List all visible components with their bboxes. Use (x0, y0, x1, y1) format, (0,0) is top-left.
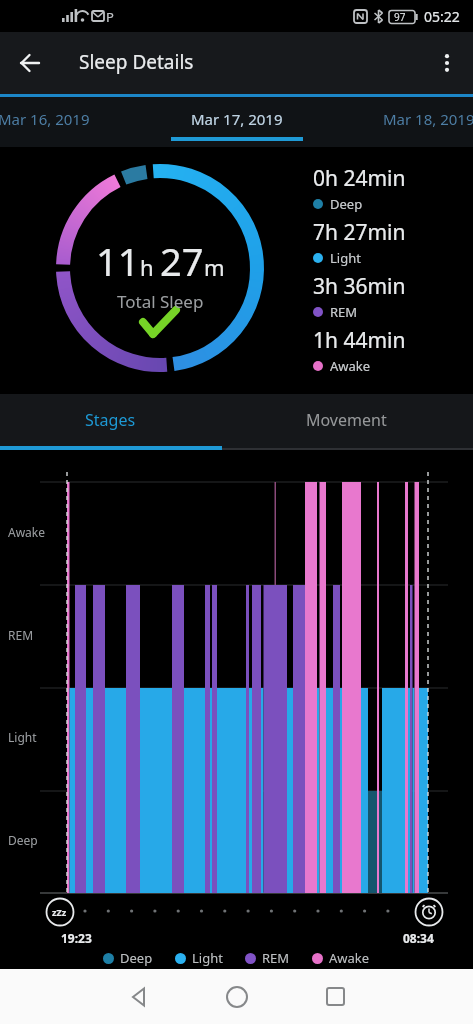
staticText: Deep (330, 195, 363, 213)
staticText: 1h 44min (313, 326, 406, 355)
staticText: 3h 36min (313, 272, 406, 301)
button[interactable] (104, 969, 174, 1024)
staticText: Deep (8, 832, 38, 848)
button[interactable]: Mar 18, 2019 (383, 109, 473, 129)
button[interactable] (6, 39, 54, 87)
staticText: Deep (120, 949, 153, 967)
staticText: Awake (329, 949, 370, 967)
staticText: 0h 24min (313, 164, 406, 193)
staticText: Awake (330, 357, 371, 375)
button[interactable]: Stages (0, 394, 236, 446)
staticText: 97 (394, 10, 406, 24)
staticText: REM (330, 303, 358, 321)
staticText: 08:34 (403, 930, 434, 946)
staticText: zZz (52, 906, 67, 918)
staticText: 27 (160, 235, 204, 287)
staticText: 19:23 (61, 930, 92, 946)
staticText: Stages (85, 409, 136, 431)
staticText: Movement (306, 409, 387, 431)
staticText: Light (8, 729, 37, 745)
button[interactable]: Mar 16, 2019 (0, 109, 90, 129)
button[interactable]: Mar 17, 2019 (191, 109, 283, 129)
button[interactable] (202, 969, 272, 1024)
staticText: Light (330, 249, 361, 267)
staticText: REM (8, 627, 34, 643)
staticText: 7h 27min (313, 218, 406, 247)
staticText: Light (192, 949, 223, 967)
staticText: P (106, 8, 114, 26)
staticText: m (204, 252, 225, 282)
button[interactable] (300, 969, 370, 1024)
staticText: Total Sleep (117, 290, 204, 313)
button[interactable] (425, 41, 469, 85)
staticText: 05:22 (424, 7, 460, 26)
staticText: h (140, 252, 160, 282)
staticText: Sleep Details (79, 49, 194, 75)
staticText: 11 (96, 235, 140, 287)
staticText: Awake (8, 524, 46, 540)
button[interactable]: Movement (236, 394, 473, 446)
staticText: REM (262, 949, 290, 967)
